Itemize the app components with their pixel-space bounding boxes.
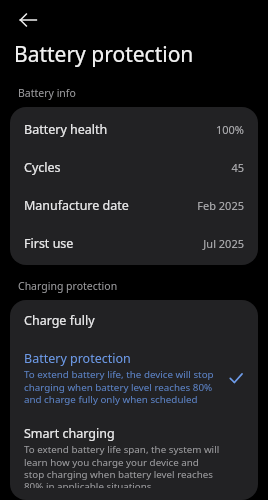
staticText: Battery protection <box>14 40 194 69</box>
staticText: 100% <box>215 122 244 137</box>
staticText: Smart charging <box>24 425 115 442</box>
staticText: Battery health <box>24 121 108 138</box>
staticText: Charging protection <box>18 279 118 293</box>
staticText: 45 <box>231 160 244 175</box>
staticText: First use <box>24 235 74 252</box>
button[interactable]: Battery protection <box>10 340 258 415</box>
staticText: Charge fully <box>24 312 95 329</box>
staticText: Manufacture date <box>24 197 129 214</box>
staticText: Feb 2025 <box>197 198 244 213</box>
button[interactable]: Charge fully <box>10 300 258 340</box>
staticText: Battery protection <box>24 350 131 367</box>
staticText: Cycles <box>24 159 61 176</box>
button[interactable]: First use <box>10 224 258 262</box>
button[interactable]: Battery health <box>10 110 258 148</box>
button[interactable]: Manufacture date <box>10 186 258 224</box>
staticText: To extend battery life span, the system … <box>24 443 220 488</box>
button[interactable]: Cycles <box>10 148 258 186</box>
button[interactable]: Smart charging <box>10 415 258 500</box>
button[interactable]: Back <box>10 2 46 38</box>
staticText: Jul 2025 <box>203 236 244 251</box>
staticText: To extend battery life, the device will … <box>24 368 220 405</box>
staticText: Battery info <box>18 86 76 100</box>
